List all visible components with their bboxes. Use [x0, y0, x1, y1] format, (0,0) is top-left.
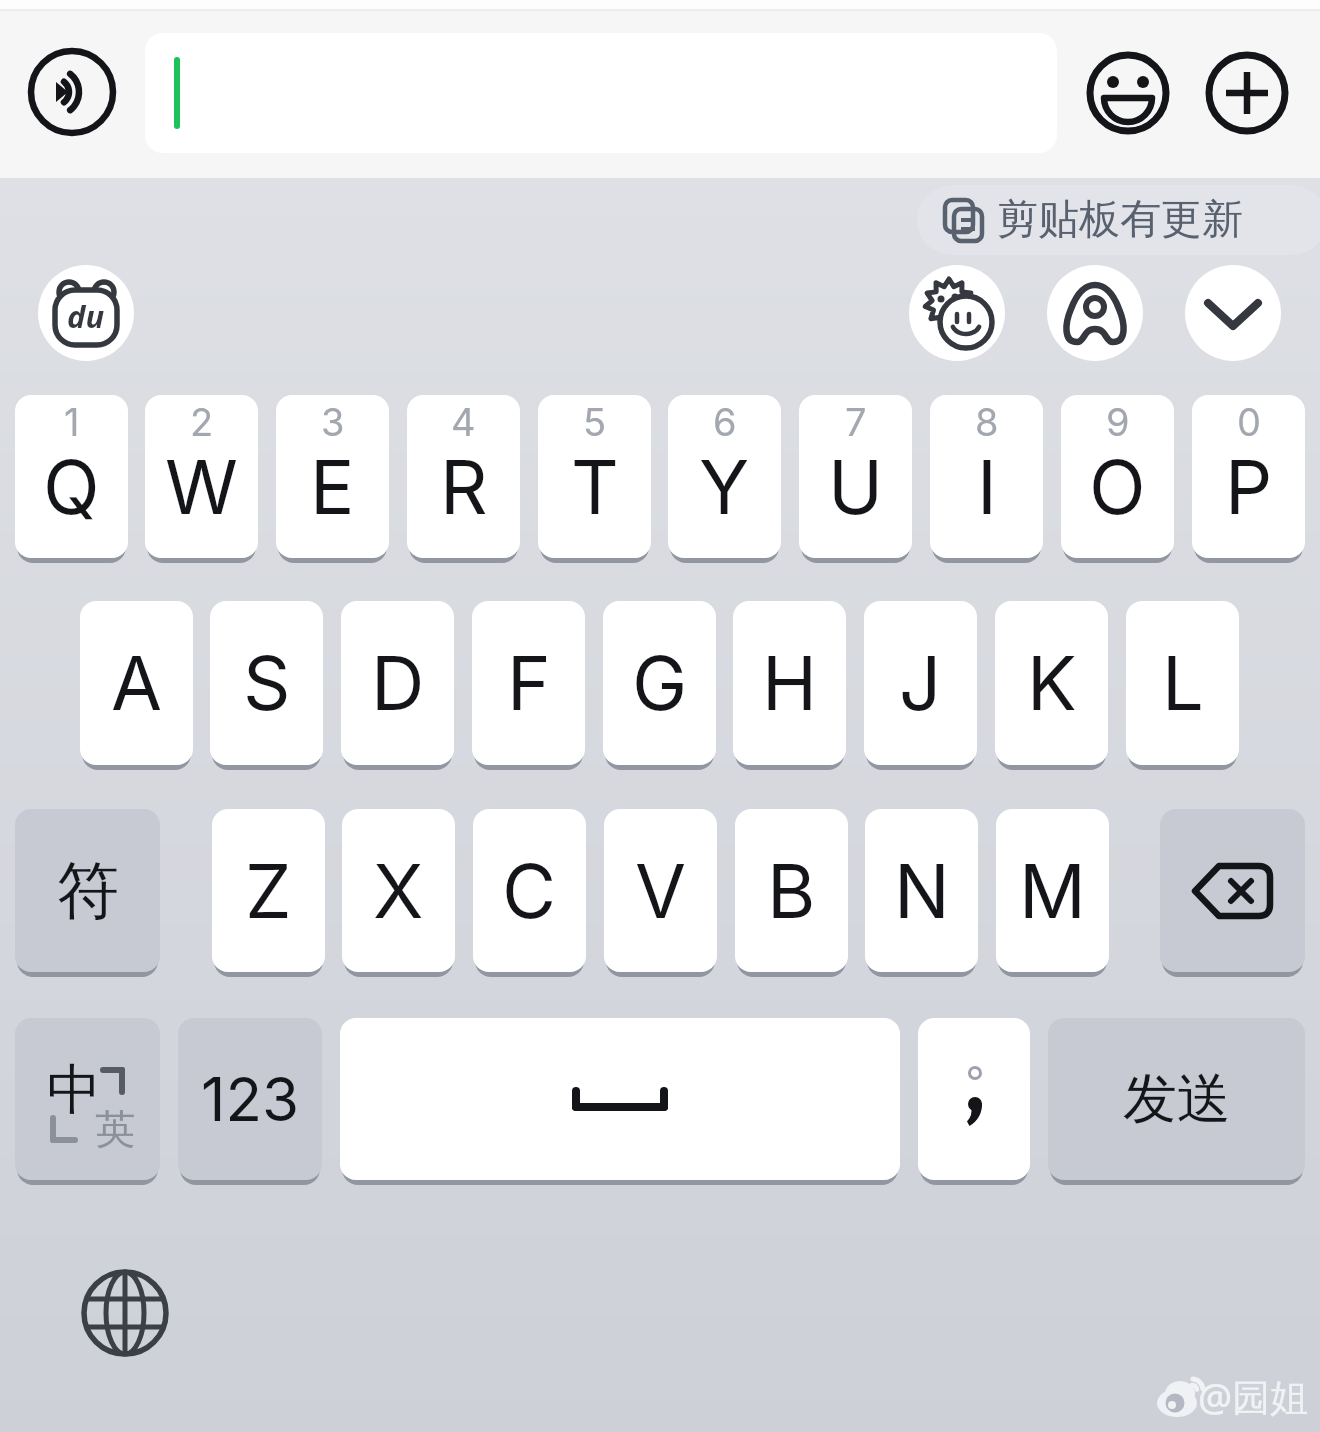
staticText: M	[1019, 846, 1086, 936]
button[interactable]: T	[538, 395, 651, 558]
button[interactable]: W	[145, 395, 258, 558]
button[interactable]: 123	[178, 1018, 322, 1180]
button[interactable]: C	[473, 809, 586, 972]
staticText: 符	[57, 852, 119, 930]
button[interactable]: 剪贴板有更新	[917, 185, 1320, 255]
button[interactable]	[27, 47, 117, 137]
button[interactable]: X	[342, 809, 455, 972]
staticText: 剪贴板有更新	[997, 194, 1243, 246]
staticText: R	[440, 442, 488, 532]
staticText: 英	[95, 1104, 135, 1154]
staticText: X	[373, 846, 424, 936]
button[interactable]: M	[996, 809, 1109, 972]
button[interactable]: R	[407, 395, 520, 558]
staticText: Y	[699, 442, 750, 532]
staticText: 7	[845, 399, 867, 445]
button[interactable]	[80, 1268, 170, 1358]
button[interactable]: K	[995, 601, 1108, 765]
staticText: I	[977, 442, 997, 532]
button[interactable]: A	[80, 601, 193, 765]
staticText: H	[762, 638, 817, 728]
button[interactable]	[1202, 48, 1292, 138]
staticText: O	[1089, 442, 1146, 532]
staticText: K	[1027, 638, 1077, 728]
staticText: 2	[190, 399, 214, 445]
staticText: 4	[451, 399, 476, 445]
staticText: 123	[201, 1063, 300, 1136]
button[interactable]: B	[735, 809, 848, 972]
button[interactable]: V	[604, 809, 717, 972]
staticText: S	[243, 638, 291, 728]
button[interactable]: 符	[15, 809, 160, 972]
staticText: U	[828, 442, 884, 532]
button[interactable]: Y	[668, 395, 781, 558]
button[interactable]: I	[930, 395, 1043, 558]
staticText: Z	[245, 846, 292, 936]
button[interactable]	[909, 265, 1005, 361]
staticText: N	[894, 846, 950, 936]
button[interactable]: 中	[15, 1018, 160, 1180]
button[interactable]: J	[864, 601, 977, 765]
button[interactable]	[1160, 809, 1305, 972]
staticText: D	[371, 638, 425, 728]
button[interactable]: du	[38, 265, 134, 361]
button[interactable]	[1083, 48, 1173, 138]
button[interactable]: Z	[212, 809, 325, 972]
button[interactable]: Q	[15, 395, 128, 558]
staticText: 9	[1106, 399, 1130, 445]
staticText: F	[507, 638, 551, 728]
staticText: T	[571, 442, 619, 532]
button[interactable]: L	[1126, 601, 1239, 765]
button[interactable]: G	[603, 601, 716, 765]
staticText: P	[1225, 442, 1273, 532]
button[interactable]: O	[1061, 395, 1174, 558]
button[interactable]: N	[865, 809, 978, 972]
staticText: 6	[713, 399, 737, 445]
button[interactable]: P	[1192, 395, 1305, 558]
staticText: E	[310, 442, 355, 532]
button[interactable]: D	[341, 601, 454, 765]
staticText: 发送	[1123, 1065, 1231, 1133]
staticText: du	[67, 295, 105, 337]
staticText: B	[767, 846, 816, 936]
button[interactable]: 发送	[1048, 1018, 1305, 1180]
button[interactable]: E	[276, 395, 389, 558]
button[interactable]	[1185, 265, 1281, 361]
staticText: 1	[64, 399, 80, 445]
button[interactable]: U	[799, 395, 912, 558]
staticText: W	[165, 442, 238, 532]
staticText: 5	[583, 399, 607, 445]
staticText: A	[111, 638, 163, 728]
staticText: 8	[975, 399, 999, 445]
staticText: L	[1162, 638, 1204, 728]
staticText: 中	[47, 1056, 101, 1124]
staticText: Q	[43, 442, 100, 532]
staticText: 3	[321, 399, 345, 445]
staticText: G	[632, 638, 688, 728]
button[interactable]	[340, 1018, 900, 1180]
button[interactable]	[1047, 265, 1143, 361]
button[interactable]: F	[472, 601, 585, 765]
staticText: C	[502, 846, 557, 936]
button[interactable]	[918, 1018, 1030, 1180]
staticText: 0	[1237, 399, 1261, 445]
button[interactable]: H	[733, 601, 846, 765]
button[interactable]	[145, 33, 1057, 153]
staticText: V	[635, 846, 687, 936]
button[interactable]: S	[210, 601, 323, 765]
staticText: J	[899, 638, 942, 728]
staticText: @园姐	[1198, 1370, 1309, 1422]
